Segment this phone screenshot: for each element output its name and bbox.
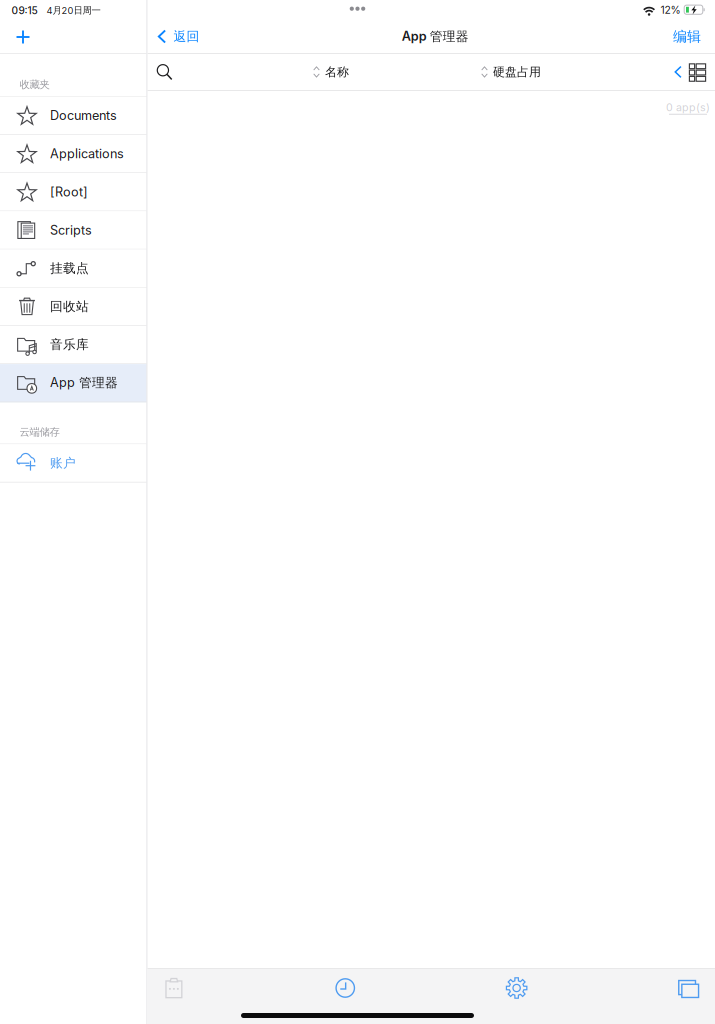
staticText: 音乐库 <box>50 337 89 353</box>
button[interactable]: 编辑 <box>665 20 715 53</box>
button[interactable]: Multitasking <box>350 7 365 11</box>
button[interactable]: New <box>6 21 40 53</box>
button[interactable]: App 管理器 <box>0 364 146 402</box>
staticText: 硬盘占用 <box>493 64 541 79</box>
staticText: 挂载点 <box>50 260 89 276</box>
button[interactable]: Windows <box>662 971 714 1005</box>
button[interactable]: [Root] <box>0 173 146 211</box>
staticText: Scripts <box>50 222 92 238</box>
staticText: 收藏夹 <box>19 78 49 91</box>
button[interactable]: Documents <box>0 97 146 135</box>
staticText: 4月20日周一 <box>46 5 100 16</box>
staticText: Applications <box>50 146 124 161</box>
staticText: 12% <box>660 4 680 16</box>
staticText: 0 app(s) <box>666 101 710 114</box>
button[interactable]: Applications <box>0 135 146 173</box>
staticText: 名称 <box>325 64 349 79</box>
button[interactable]: 硬盘占用 <box>349 54 541 89</box>
button[interactable]: 名称 <box>182 54 349 89</box>
button[interactable]: Settings <box>490 971 543 1005</box>
button[interactable]: Search <box>148 54 182 90</box>
button[interactable]: 音乐库 <box>0 326 146 364</box>
staticText: 云端储存 <box>19 425 59 439</box>
staticText: App 管理器 <box>50 375 118 391</box>
staticText: 账户 <box>50 455 76 471</box>
button[interactable]: 回收站 <box>0 288 146 326</box>
staticText: App 管理器 <box>402 28 469 44</box>
staticText: Documents <box>50 108 117 123</box>
button[interactable]: View mode <box>685 54 710 90</box>
staticText: 编辑 <box>673 28 701 45</box>
staticText: [Root] <box>50 184 88 199</box>
button[interactable]: 挂载点 <box>0 249 146 288</box>
button[interactable]: Recents <box>319 971 372 1005</box>
button[interactable]: Collapse <box>655 54 685 90</box>
staticText: 09:15 <box>11 4 37 17</box>
button[interactable]: 返回 <box>148 20 206 53</box>
staticText: 回收站 <box>50 298 89 314</box>
staticText: 返回 <box>174 28 200 44</box>
button[interactable]: Scripts <box>0 211 146 249</box>
button[interactable]: 账户 <box>0 444 146 482</box>
button[interactable]: Clipboard <box>148 971 200 1005</box>
